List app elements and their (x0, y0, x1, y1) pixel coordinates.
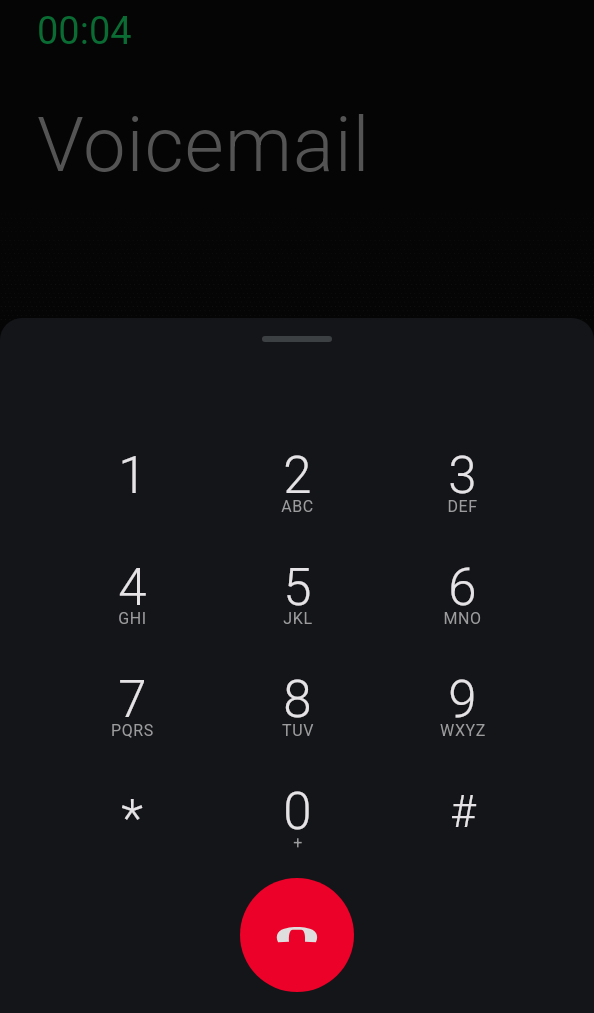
staticText: * (121, 789, 143, 849)
staticText: 8 (283, 670, 312, 730)
button[interactable]: 2 (215, 446, 380, 558)
staticText: Voicemail (37, 100, 371, 189)
button[interactable]: End call (240, 878, 354, 992)
button[interactable]: 4 (49, 558, 215, 670)
staticText: GHI (118, 609, 147, 628)
staticText: 9 (448, 670, 477, 730)
staticText: PQRS (111, 721, 154, 740)
button[interactable]: 8 (215, 670, 380, 782)
staticText: 0 (283, 782, 312, 842)
staticText: # (450, 786, 476, 838)
staticText: 7 (118, 670, 147, 730)
button[interactable]: Pound (380, 782, 545, 894)
staticText: 00:04 (37, 9, 132, 54)
staticText: WXYZ (440, 721, 486, 740)
button[interactable]: 7 (49, 670, 215, 782)
staticText: 5 (283, 558, 312, 618)
button[interactable]: 3 (380, 446, 545, 558)
staticText: 1 (118, 446, 147, 506)
button[interactable]: 6 (380, 558, 545, 670)
button[interactable]: Star (49, 782, 215, 894)
staticText: DEF (447, 497, 478, 516)
staticText: 3 (448, 446, 477, 506)
staticText: TUV (282, 721, 314, 740)
button[interactable]: 5 (215, 558, 380, 670)
staticText: 6 (448, 558, 477, 618)
button[interactable]: 9 (380, 670, 545, 782)
staticText: + (293, 833, 303, 852)
staticText: 4 (118, 558, 147, 618)
staticText: ABC (281, 497, 314, 516)
staticText: MNO (443, 609, 482, 628)
staticText: 2 (283, 446, 312, 506)
button[interactable]: 0 (215, 782, 380, 894)
button[interactable]: 1 (49, 446, 215, 558)
staticText: JKL (283, 609, 313, 628)
